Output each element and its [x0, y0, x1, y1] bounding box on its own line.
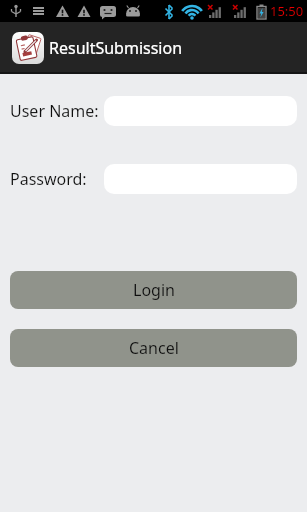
staticText: Login — [133, 279, 175, 301]
staticText: User Name: — [10, 100, 99, 122]
staticText: 15:50 — [270, 2, 304, 20]
button[interactable]: Cancel — [10, 329, 297, 367]
button[interactable]: Login — [10, 271, 297, 309]
staticText: Cancel — [129, 337, 179, 359]
staticText: ResultSubmission — [49, 37, 183, 59]
staticText: Password: — [10, 168, 87, 190]
